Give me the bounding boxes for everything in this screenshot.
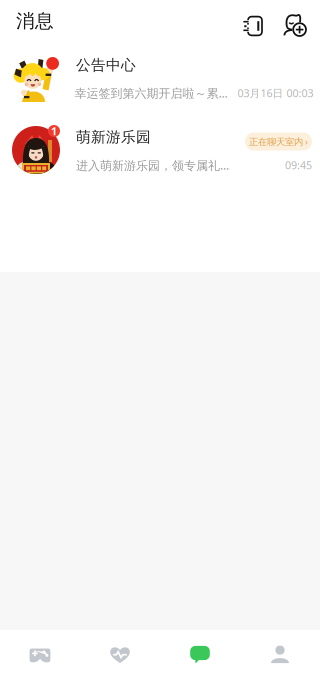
staticText: 消息: [16, 9, 54, 32]
staticText: 09:45: [285, 158, 312, 172]
staticText: 幸运签到第六期开启啦～累...: [74, 85, 227, 101]
staticText: 进入萌新游乐园，领专属礼物，头像...: [76, 157, 239, 173]
button[interactable]: Contacts: [236, 0, 270, 42]
button[interactable]: Messages: [160, 630, 240, 678]
button[interactable]: Me: [240, 630, 320, 678]
staticText: 萌新游乐园: [76, 128, 151, 146]
staticText: 03月16日 00:03: [237, 86, 313, 100]
button[interactable]: Add friend: [279, 0, 312, 42]
staticText: 1: [51, 124, 57, 138]
staticText: 正在聊天室内 ›: [249, 135, 308, 148]
button[interactable]: 公告中心: [0, 42, 320, 114]
staticText: 公告中心: [76, 56, 136, 74]
button[interactable]: Moments: [80, 630, 160, 678]
button[interactable]: 1: [0, 114, 320, 186]
button[interactable]: Games: [0, 630, 80, 678]
